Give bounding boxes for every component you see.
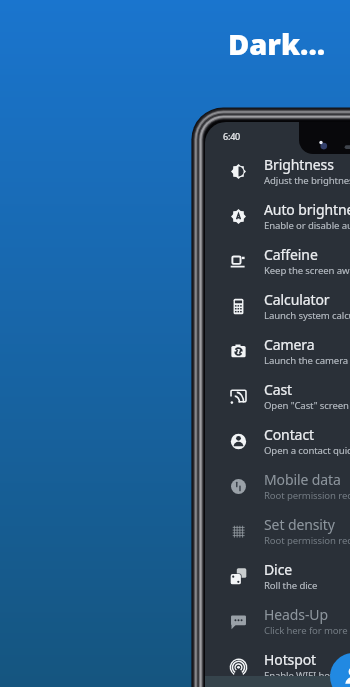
staticText: Launch the camera xyxy=(264,354,349,367)
button[interactable]: Hotspot xyxy=(205,644,350,687)
staticText: Set density xyxy=(264,515,335,534)
staticText: Root permission required xyxy=(264,489,350,502)
staticText: Click here for more xyxy=(264,624,348,637)
button[interactable]: Contact xyxy=(205,419,350,464)
staticText: Mobile data xyxy=(264,470,341,489)
staticText: Heads-Up xyxy=(264,605,328,624)
staticText: Dark... xyxy=(228,24,326,63)
button[interactable]: Cast xyxy=(205,374,350,419)
button[interactable]: Caffeine xyxy=(205,239,350,284)
staticText: Auto brightness xyxy=(264,200,350,219)
staticText: Hotspot xyxy=(264,650,317,669)
button[interactable]: Auto brightness xyxy=(205,194,350,239)
staticText: Open a contact quickly xyxy=(264,444,350,457)
button[interactable]: Heads-Up xyxy=(205,599,350,644)
staticText: Contact xyxy=(264,425,314,444)
button[interactable]: Calculator xyxy=(205,284,350,329)
button[interactable]: Dice xyxy=(205,554,350,599)
button[interactable]: Brightness xyxy=(205,149,350,194)
staticText: Roll the dice xyxy=(264,579,318,592)
staticText: Caffeine xyxy=(264,245,318,264)
staticText: Calculator xyxy=(264,290,330,309)
staticText: Root permission required xyxy=(264,534,350,547)
staticText: 6:40 xyxy=(223,130,241,142)
staticText: Enable WIFI hotspot xyxy=(264,669,350,682)
staticText: Dice xyxy=(264,560,293,579)
staticText: Adjust the brightness xyxy=(264,174,350,187)
staticText: Enable or disable auto xyxy=(264,219,350,232)
button[interactable]: Camera xyxy=(205,329,350,374)
button[interactable]: Add contact xyxy=(330,653,350,687)
staticText: Cast xyxy=(264,380,293,399)
staticText: Brightness xyxy=(264,155,334,174)
button[interactable]: Set density xyxy=(205,509,350,554)
staticText: Camera xyxy=(264,335,315,354)
staticText: Open "Cast" screen xyxy=(264,399,349,412)
staticText: Keep the screen awake xyxy=(264,264,350,277)
button[interactable]: Mobile data xyxy=(205,464,350,509)
staticText: Launch system calculator xyxy=(264,309,350,322)
